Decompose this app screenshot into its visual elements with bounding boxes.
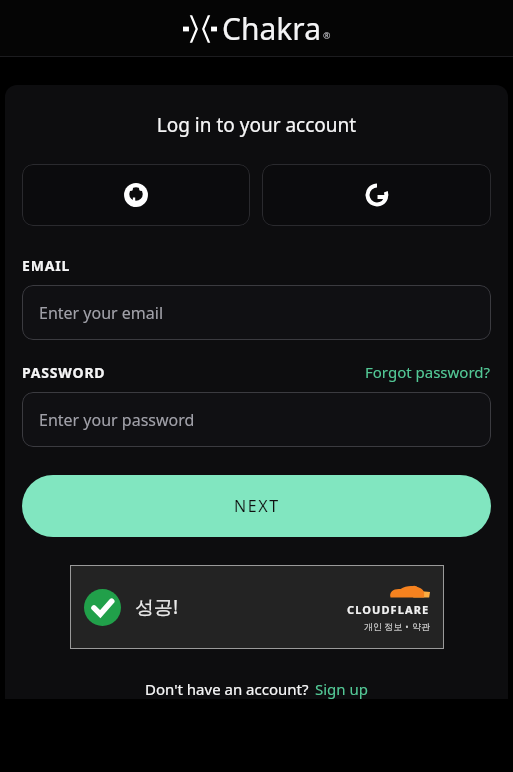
staticText: CLOUDFLARE bbox=[347, 602, 430, 617]
staticText: 개인 정보 bbox=[364, 620, 403, 632]
staticText: Enter your email bbox=[39, 302, 164, 324]
button[interactable]: Enter your email bbox=[22, 285, 491, 340]
button[interactable]: Enter your password bbox=[22, 392, 491, 447]
button[interactable]: 성공! bbox=[70, 565, 444, 649]
staticText: ® bbox=[323, 29, 331, 41]
button[interactable]: Sign in with GitHub bbox=[22, 164, 250, 226]
staticText: PASSWORD bbox=[22, 363, 106, 382]
staticText: Log in to your account bbox=[22, 112, 491, 138]
staticText: 약관 bbox=[412, 621, 430, 632]
staticText: 성공! bbox=[135, 594, 179, 620]
staticText: NEXT bbox=[234, 495, 280, 517]
button[interactable]: Sign up bbox=[315, 679, 368, 699]
staticText: EMAIL bbox=[22, 256, 71, 275]
button[interactable]: Forgot password? bbox=[365, 362, 491, 382]
staticText: Chakra bbox=[222, 8, 321, 49]
staticText: Forgot password? bbox=[365, 362, 491, 382]
button[interactable]: Sign in with Google bbox=[262, 164, 491, 226]
staticText: Sign up bbox=[315, 679, 368, 699]
staticText: Don't have an account? bbox=[145, 679, 309, 699]
staticText: Enter your password bbox=[39, 409, 195, 431]
staticText: • bbox=[403, 620, 412, 632]
button[interactable]: NEXT bbox=[22, 475, 491, 537]
